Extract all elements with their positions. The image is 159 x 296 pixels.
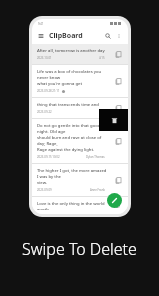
staticText: what you're gonna get [37, 81, 83, 87]
staticText: Dylan Thomas [86, 155, 105, 159]
button[interactable]: Delete [99, 109, 128, 131]
staticText: Anne Frank [90, 188, 105, 192]
button[interactable]: Copy [113, 103, 124, 114]
staticText: ClipBoard [49, 31, 83, 41]
button[interactable]: After all, tomorrow is another day [32, 44, 128, 64]
staticText: 9:41 [38, 22, 44, 26]
button[interactable]: Copy [113, 201, 124, 210]
button[interactable]: Copy [113, 175, 124, 186]
staticText: Life was a box of chocolates you never k… [37, 69, 109, 81]
staticText: view. [37, 180, 48, 186]
staticText: 2023-10-01 [37, 56, 52, 60]
staticText: 4:15 [99, 56, 105, 60]
staticText: Swipe To Delete [22, 238, 137, 260]
button[interactable]: Copy [113, 49, 124, 60]
staticText: should burn and rave at close of day; Ra… [37, 135, 109, 147]
button[interactable]: Life was a box of chocolates you never k… [32, 65, 128, 97]
button[interactable]: Search [104, 32, 112, 40]
button[interactable]: More options [115, 32, 123, 40]
staticText: Rage against the dying light. [37, 147, 95, 153]
staticText: Do not go gentle into that good night. O… [37, 123, 109, 135]
staticText: 2023-09-28 21:11 [37, 89, 60, 93]
staticText: The higher I got, the more amazed I was … [37, 168, 109, 180]
button[interactable]: The higher I got, the more amazed I was … [32, 164, 128, 196]
button[interactable]: New clip [107, 193, 122, 208]
button[interactable]: Love is the only thing in the world wort… [32, 197, 128, 214]
staticText: 2023-09-22 [37, 110, 52, 114]
staticText: After all, tomorrow is another day [37, 48, 105, 54]
staticText: Love is the only thing in the world wort… [37, 201, 109, 210]
button[interactable]: Menu [37, 32, 45, 40]
staticText: thing that transcends time and [37, 102, 99, 108]
button[interactable]: thing that transcends time and [32, 98, 128, 118]
button[interactable]: Do not go gentle into that good night. O… [32, 119, 128, 163]
button[interactable]: Copy [113, 76, 124, 87]
button[interactable]: Copy [113, 136, 124, 147]
staticText: 2023-09-09 [37, 188, 52, 192]
staticText: 2023-09-15 10:02 [37, 155, 60, 159]
